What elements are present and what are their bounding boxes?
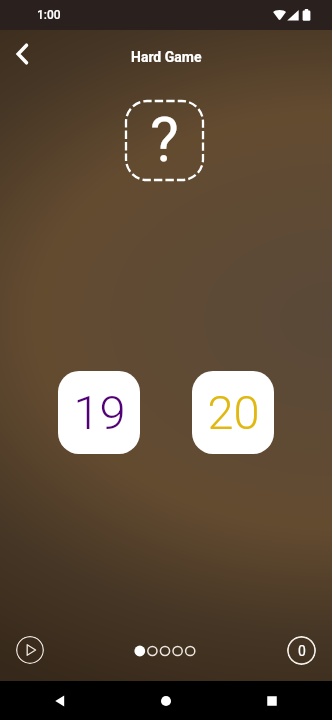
staticText: 20	[207, 385, 260, 440]
staticText: 1:00	[37, 8, 61, 22]
staticText: 19	[73, 385, 126, 440]
button[interactable]: Back	[4, 35, 41, 72]
button[interactable]: 0	[287, 636, 316, 665]
button[interactable]: 19	[58, 371, 140, 454]
button[interactable]: Back	[42, 683, 78, 719]
button[interactable]: Recents	[254, 683, 290, 719]
staticText: 0	[298, 643, 306, 659]
staticText: Hard Game	[131, 49, 202, 65]
staticText: ?	[150, 104, 179, 175]
button[interactable]: Unknown card	[125, 100, 204, 181]
button[interactable]: 20	[192, 371, 274, 454]
button[interactable]: Home	[148, 683, 184, 719]
button[interactable]: Play	[16, 636, 44, 664]
